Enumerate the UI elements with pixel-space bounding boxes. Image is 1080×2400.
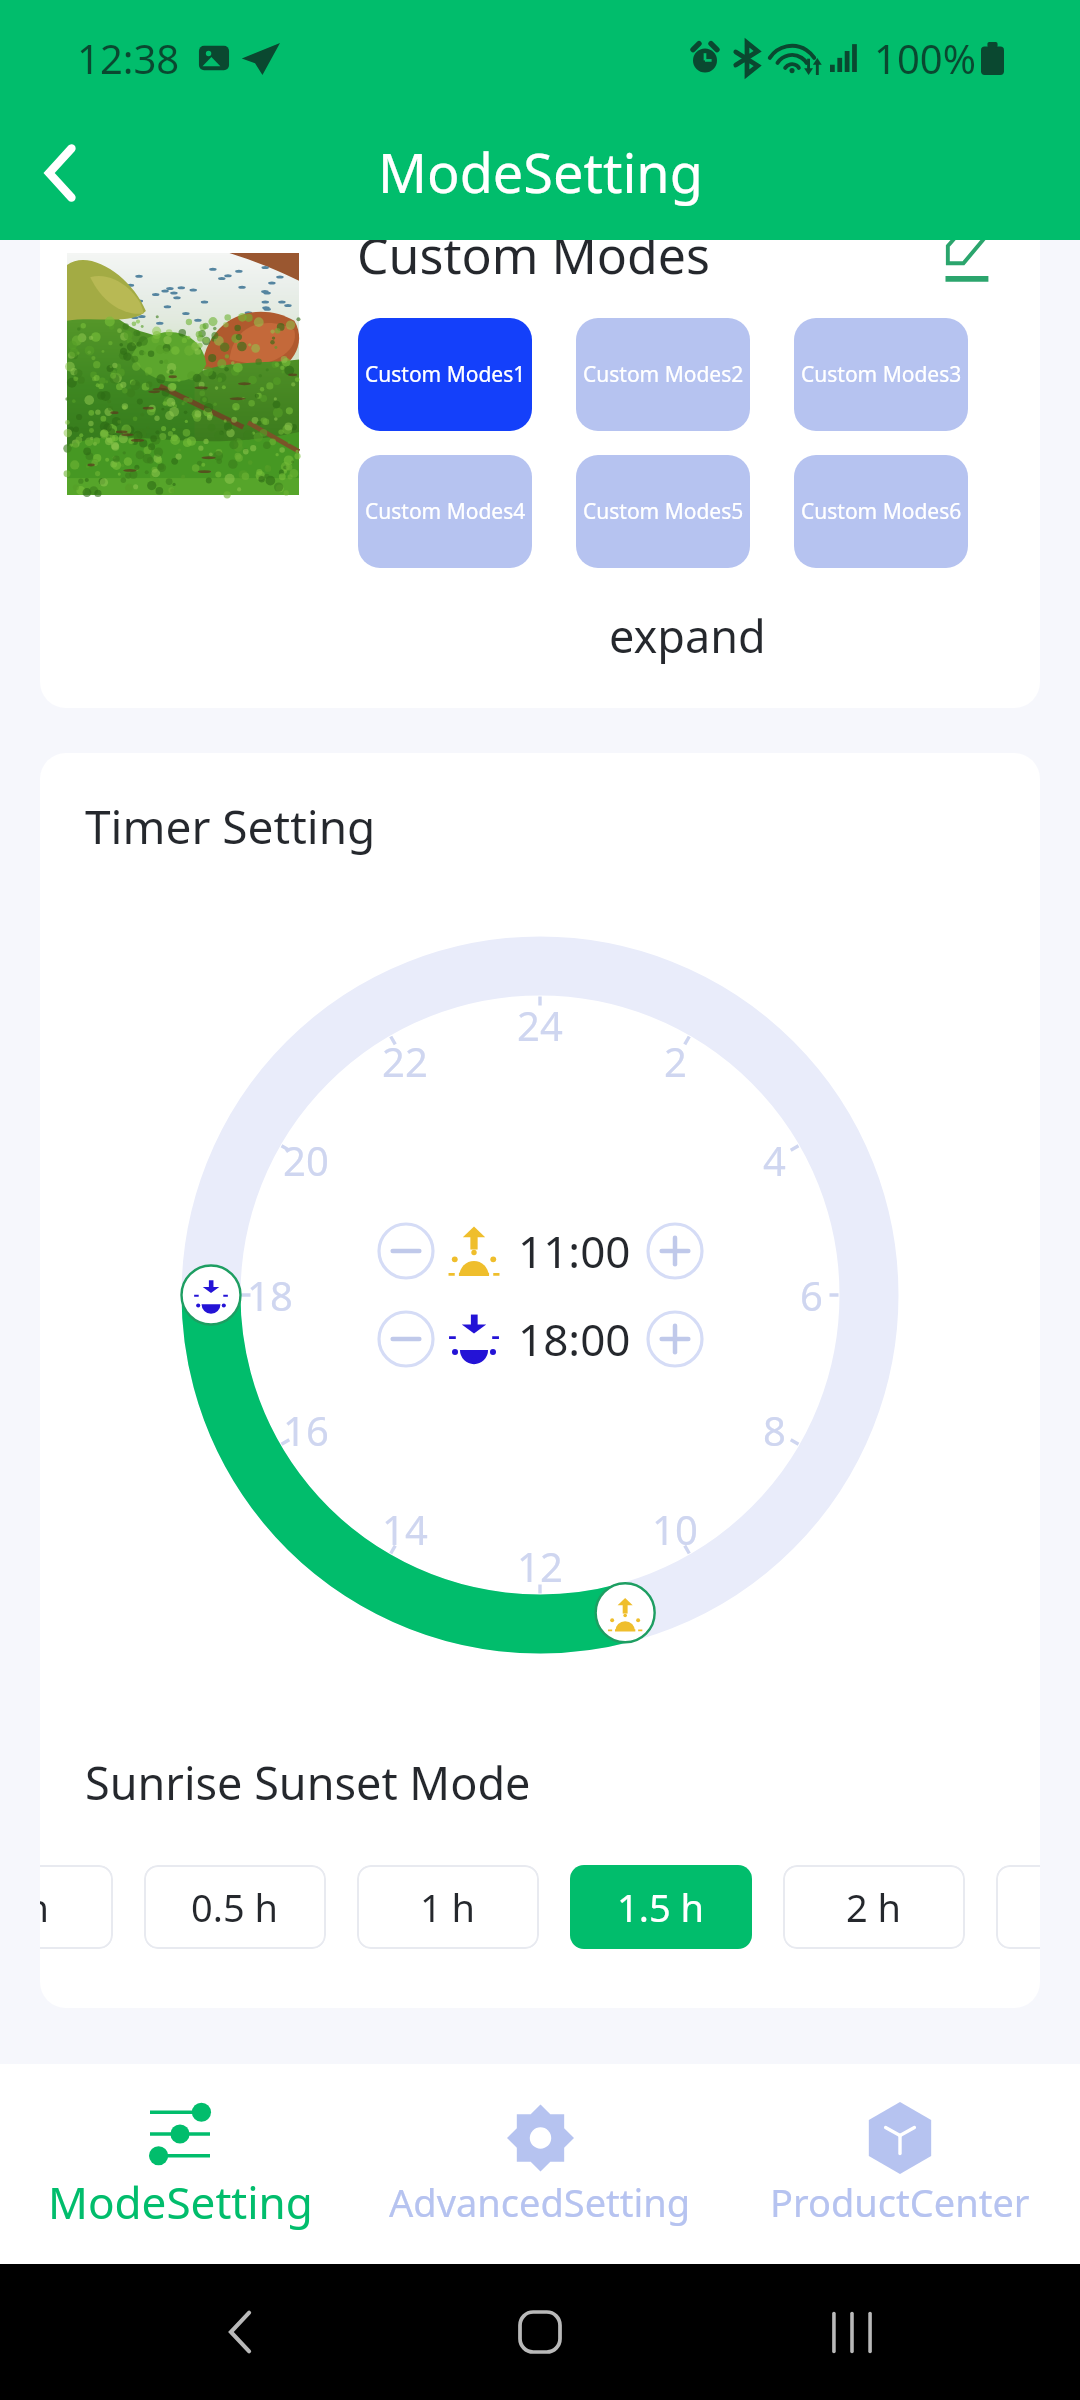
button[interactable]: 0.5 h — [144, 1865, 326, 1949]
staticText: 12 — [517, 1539, 563, 1593]
staticText: ModeSetting — [378, 135, 703, 209]
button[interactable]: 2 h — [783, 1865, 965, 1949]
staticText: 1.5 h — [617, 1881, 705, 1933]
staticText: 20 — [283, 1133, 329, 1187]
staticText: Custom Modes — [357, 240, 710, 289]
staticText: 1 h — [420, 1881, 476, 1933]
button[interactable]: Increase — [646, 1310, 704, 1368]
staticText: 16 — [283, 1403, 329, 1457]
staticText: 6 — [800, 1268, 823, 1322]
staticText: Custom Modes6 — [801, 497, 962, 526]
button[interactable]: Custom Modes5 — [576, 455, 750, 568]
staticText: 18 — [247, 1268, 293, 1322]
staticText: 8 — [763, 1403, 786, 1457]
staticText: 0.5 h — [191, 1881, 279, 1933]
staticText: 22 — [382, 1034, 428, 1088]
button[interactable]: Edit — [926, 240, 1004, 296]
staticText: 2 h — [846, 1881, 902, 1933]
button[interactable]: Recent apps — [808, 2288, 896, 2376]
staticText: AdvancedSetting — [389, 2176, 691, 2228]
staticText: Custom Modes4 — [365, 497, 526, 526]
button[interactable]: 0 h — [40, 1865, 113, 1949]
staticText: 24 — [517, 998, 563, 1052]
staticText: Custom Modes1 — [365, 360, 526, 389]
staticText: expand — [609, 605, 766, 666]
staticText: Timer Setting — [85, 795, 376, 858]
staticText: 100% — [874, 31, 976, 85]
staticText: Custom Modes2 — [583, 360, 744, 389]
button[interactable]: Decrease — [377, 1310, 435, 1368]
staticText: Custom Modes3 — [801, 360, 962, 389]
button[interactable]: Home — [496, 2288, 584, 2376]
button[interactable]: 1.5 h — [570, 1865, 752, 1949]
button[interactable]: Increase — [646, 1222, 704, 1280]
button[interactable]: 1 h — [357, 1865, 539, 1949]
staticText: ProductCenter — [770, 2176, 1030, 2228]
staticText: ModeSetting — [48, 2172, 313, 2232]
button[interactable]: Aquarium preview — [67, 253, 299, 495]
button[interactable]: Custom Modes2 — [576, 318, 750, 431]
staticText: 10 — [652, 1502, 698, 1556]
button[interactable]: Custom Modes6 — [794, 455, 968, 568]
button[interactable]: Back — [0, 113, 120, 233]
staticText: 18:00 — [518, 1309, 631, 1369]
staticText: 12:38 — [77, 31, 180, 85]
button[interactable]: 2.5 h — [996, 1865, 1040, 1949]
button[interactable]: Back — [196, 2288, 284, 2376]
button[interactable]: Custom Modes4 — [358, 455, 532, 568]
staticText: 2 — [664, 1034, 687, 1088]
staticText: Sunrise Sunset Mode — [85, 1752, 531, 1813]
staticText: 11:00 — [518, 1221, 631, 1281]
button[interactable]: expand — [592, 603, 782, 667]
staticText: 14 — [382, 1502, 428, 1556]
staticText: Custom Modes5 — [583, 497, 744, 526]
staticText: 4 — [763, 1133, 786, 1187]
button[interactable]: Custom Modes1 — [358, 318, 532, 431]
button[interactable]: ProductCenter — [720, 2064, 1080, 2264]
button[interactable]: AdvancedSetting — [360, 2064, 720, 2264]
button[interactable]: ModeSetting — [0, 2064, 360, 2264]
button[interactable]: Decrease — [377, 1222, 435, 1280]
staticText: 0 h — [40, 1881, 50, 1933]
button[interactable]: Custom Modes3 — [794, 318, 968, 431]
